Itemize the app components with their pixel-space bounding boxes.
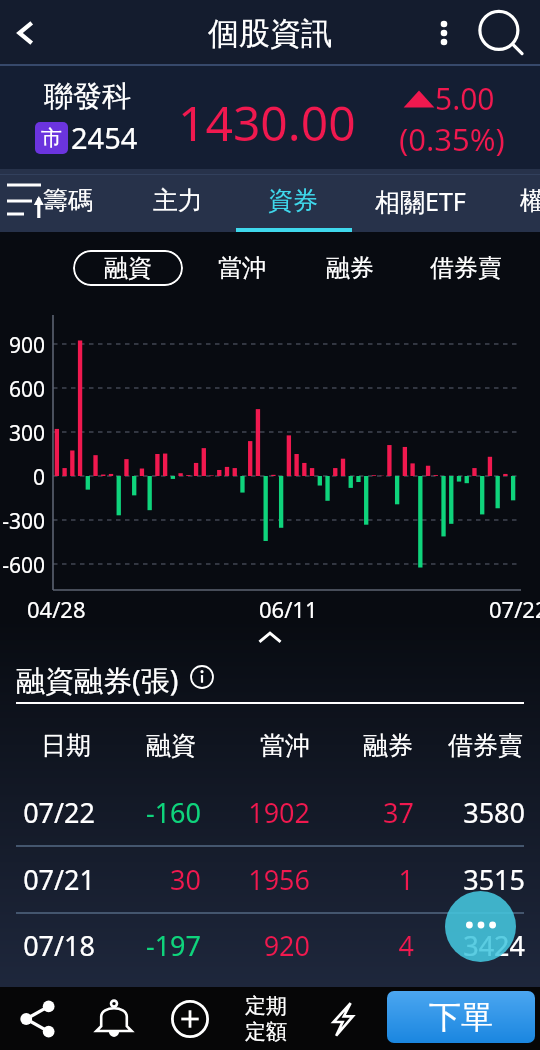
staticText: -600: [0, 551, 45, 580]
staticText: 籌碼: [43, 185, 93, 216]
staticText: 融資: [146, 730, 196, 761]
staticText: 3515: [385, 861, 525, 898]
staticText: 5.00: [435, 78, 495, 119]
staticText: 定額: [245, 1019, 287, 1045]
staticText: 07/21: [0, 861, 95, 898]
staticText: 當沖: [218, 253, 266, 283]
staticText: 主力: [153, 185, 203, 216]
button[interactable]: Back: [0, 8, 50, 58]
staticText: 900: [0, 331, 45, 360]
button[interactable]: 籌碼: [6, 169, 130, 232]
button[interactable]: Info: [189, 664, 215, 690]
button[interactable]: 相關ETF: [358, 169, 482, 232]
staticText: 30: [61, 861, 201, 898]
button[interactable]: Search: [473, 5, 531, 63]
button[interactable]: 07/21: [0, 847, 540, 913]
button[interactable]: 資券: [231, 169, 355, 232]
button[interactable]: 權: [470, 169, 540, 232]
button[interactable]: Collapse chart: [252, 620, 288, 656]
staticText: 當沖: [260, 730, 310, 761]
staticText: 下單: [429, 997, 493, 1037]
button[interactable]: 融券: [295, 250, 405, 286]
staticText: 06/11: [259, 594, 318, 624]
staticText: 920: [170, 927, 310, 964]
staticText: 融資: [104, 253, 152, 283]
staticText: 600: [0, 375, 45, 404]
staticText: 07/22: [489, 594, 540, 624]
staticText: 4: [274, 927, 414, 964]
button[interactable]: 主力: [116, 169, 240, 232]
staticText: -160: [61, 794, 201, 831]
staticText: 04/28: [27, 594, 86, 624]
staticText: 300: [0, 419, 45, 448]
staticText: 0: [0, 463, 45, 492]
staticText: 個股資訊: [208, 14, 332, 53]
button[interactable]: Sort: [0, 169, 50, 232]
button[interactable]: More actions: [445, 891, 516, 962]
staticText: 1430.00: [178, 90, 356, 155]
staticText: 相關ETF: [375, 184, 466, 218]
button[interactable]: 當沖: [187, 250, 297, 286]
staticText: 07/18: [0, 927, 95, 964]
staticText: 融資融券(張): [16, 660, 179, 700]
staticText: 1902: [170, 794, 310, 831]
staticText: -197: [61, 927, 201, 964]
staticText: 聯發科: [44, 78, 131, 115]
staticText: (0.35%): [399, 118, 505, 160]
staticText: 37: [274, 794, 414, 831]
staticText: 權: [520, 185, 540, 216]
button[interactable]: 借券賣: [411, 250, 521, 286]
staticText: 定期: [245, 993, 287, 1019]
button[interactable]: 07/22: [0, 780, 540, 846]
staticText: 1: [274, 861, 414, 898]
button[interactable]: More options: [420, 9, 468, 57]
button[interactable]: 融資: [73, 250, 183, 286]
button[interactable]: Alerts: [84, 989, 144, 1049]
button[interactable]: 下單: [387, 991, 535, 1043]
staticText: 融券: [326, 253, 374, 283]
button[interactable]: Quick trade: [313, 989, 373, 1049]
button[interactable]: 07/18: [0, 913, 540, 979]
staticText: 1956: [170, 861, 310, 898]
staticText: 借券賣: [430, 253, 502, 283]
button[interactable]: Add: [160, 989, 220, 1049]
staticText: 07/22: [0, 794, 95, 831]
staticText: 融券: [363, 730, 413, 761]
staticText: 市: [41, 125, 62, 151]
staticText: 3424: [385, 927, 525, 964]
staticText: -300: [0, 507, 45, 536]
staticText: 日期: [41, 730, 91, 761]
staticText: 2454: [71, 118, 138, 157]
staticText: 資券: [268, 185, 318, 216]
staticText: 借券賣: [448, 730, 523, 761]
button[interactable]: 定期: [236, 987, 296, 1050]
button[interactable]: Share: [8, 989, 68, 1049]
staticText: 3580: [385, 794, 525, 831]
